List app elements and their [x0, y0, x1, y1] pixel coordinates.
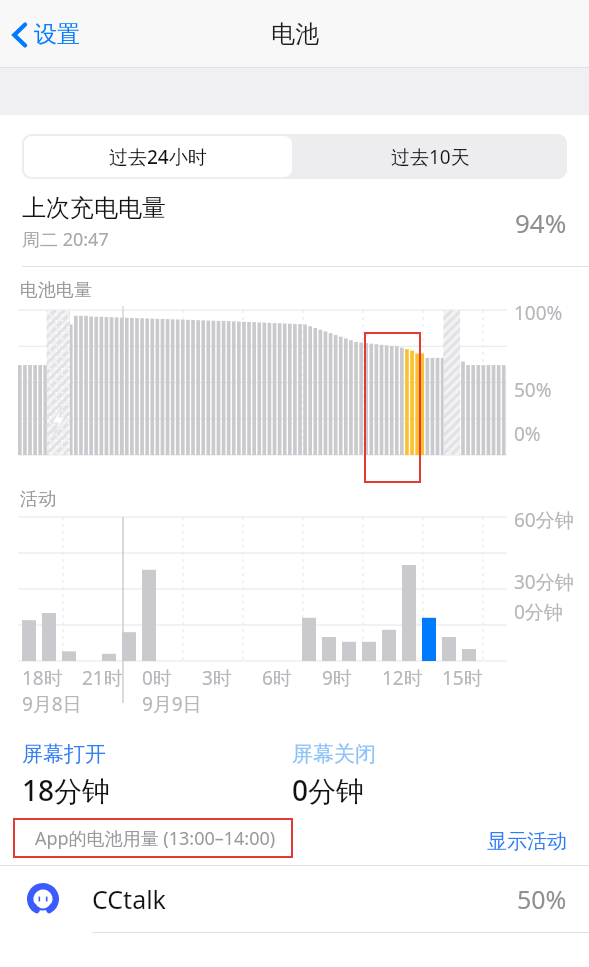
- staticText: CCtalk: [92, 882, 517, 916]
- button[interactable]: 过去10天: [294, 134, 567, 179]
- button[interactable]: 显示活动: [481, 823, 573, 860]
- staticText: 0分钟: [292, 771, 365, 809]
- staticText: 3时: [202, 665, 232, 691]
- staticText: 18时: [22, 665, 63, 691]
- staticText: 0分钟: [514, 599, 563, 625]
- staticText: 18分钟: [22, 771, 111, 809]
- staticText: 过去24小时: [109, 144, 207, 170]
- staticText: 电池: [271, 19, 319, 49]
- staticText: 6时: [262, 665, 292, 691]
- button[interactable]: 设置: [8, 14, 84, 55]
- staticText: 过去10天: [391, 144, 470, 170]
- staticText: 50%: [517, 882, 567, 916]
- button[interactable]: 过去24小时: [24, 136, 292, 177]
- staticText: 周二 20:47: [22, 227, 109, 252]
- staticText: 电池电量: [20, 279, 92, 302]
- staticText: 显示活动: [487, 829, 567, 854]
- staticText: 30分钟: [514, 569, 574, 595]
- staticText: 0时: [142, 665, 172, 691]
- staticText: 屏幕打开: [22, 741, 106, 767]
- staticText: 9时: [322, 665, 352, 691]
- staticText: 12时: [382, 665, 423, 691]
- staticText: 上次充电电量: [22, 193, 166, 223]
- staticText: 活动: [20, 488, 56, 511]
- other: CCtalk: [22, 878, 64, 920]
- staticText: 21时: [82, 665, 123, 691]
- staticText: 屏幕关闭: [292, 741, 376, 767]
- staticText: 设置: [34, 20, 80, 49]
- staticText: 0%: [514, 421, 541, 447]
- staticText: 94%: [515, 205, 567, 240]
- staticText: 100%: [514, 300, 563, 326]
- staticText: 9月9日: [142, 691, 202, 717]
- staticText: App的电池用量 (13:00–14:00): [35, 826, 276, 851]
- staticText: 9月8日: [22, 691, 82, 717]
- staticText: 60分钟: [514, 507, 574, 533]
- staticText: 50%: [514, 377, 552, 403]
- button[interactable]: CCtalk: [0, 866, 589, 932]
- staticText: 15时: [442, 665, 483, 691]
